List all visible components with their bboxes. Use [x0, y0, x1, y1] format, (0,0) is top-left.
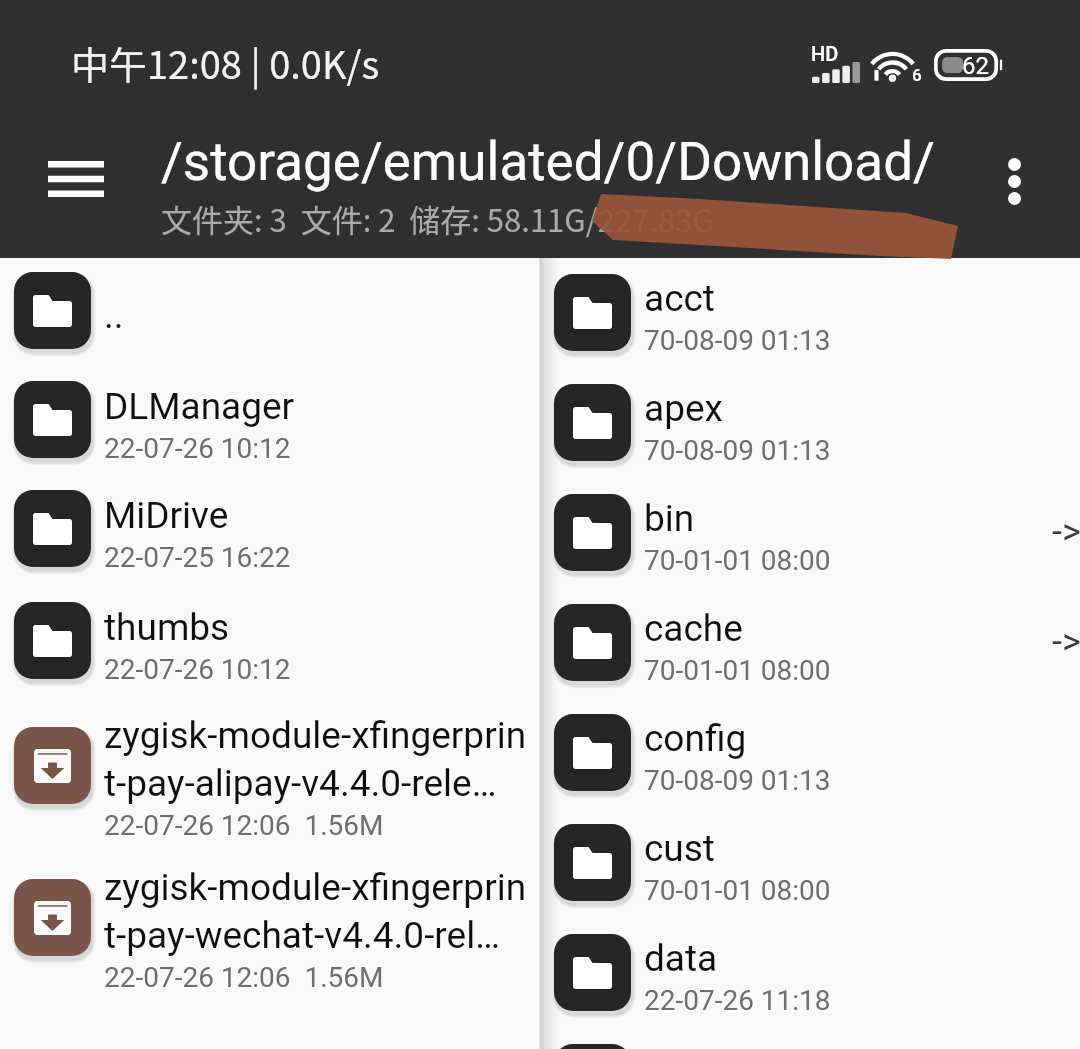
- staticText: DLManager: [104, 385, 295, 428]
- button[interactable]: ..: [0, 258, 539, 367]
- staticText: cache: [644, 607, 743, 650]
- button[interactable]: cache: [541, 589, 1080, 699]
- button[interactable]: zygisk-module-xfingerprin t-pay-wechat-v…: [0, 843, 539, 995]
- button[interactable]: bin: [541, 479, 1080, 589]
- staticText: 70-08-09 01:13: [644, 434, 831, 467]
- button[interactable]: config: [541, 699, 1080, 809]
- button[interactable]: More options: [966, 140, 1062, 222]
- staticText: data: [644, 937, 718, 980]
- button[interactable]: DLManager: [0, 367, 539, 476]
- staticText: MiDrive: [104, 494, 229, 537]
- staticText: 70-01-01 08:00: [644, 654, 831, 687]
- staticText: zygisk-module-xfingerprin t-pay-alipay-v…: [104, 714, 527, 805]
- staticText: cust: [644, 827, 715, 870]
- staticText: ..: [104, 294, 124, 337]
- staticText: ->: [1052, 511, 1080, 553]
- staticText: config: [644, 717, 747, 760]
- staticText: 22-07-26 12:06 1.56M: [104, 961, 384, 994]
- staticText: 22-07-26 10:12: [104, 432, 291, 465]
- staticText: 70-08-09 01:13: [644, 324, 831, 357]
- staticText: 22-07-26 12:06 1.56M: [104, 809, 384, 842]
- staticText: ->: [1052, 621, 1080, 663]
- staticText: 6: [912, 65, 922, 85]
- staticText: 22-07-26 11:18: [644, 984, 831, 1017]
- button[interactable]: apex: [541, 369, 1080, 479]
- staticText: 22-07-25 16:22: [104, 541, 291, 574]
- staticText: 70-08-09 01:13: [644, 764, 831, 797]
- staticText: 文件夹: 3 文件: 2 储存: 58.11G/227.83G: [161, 196, 714, 241]
- staticText: 70-01-01 08:00: [644, 544, 831, 577]
- button[interactable]: acct: [541, 259, 1080, 369]
- button[interactable]: zygisk-module-xfingerprin t-pay-alipay-v…: [0, 691, 539, 843]
- staticText: apex: [644, 387, 723, 430]
- staticText: 中午12:08 | 0.0K/s: [71, 35, 380, 90]
- button[interactable]: Menu: [28, 138, 124, 220]
- staticText: /storage/emulated/0/Download/: [161, 131, 935, 193]
- staticText: 70-01-01 08:00: [644, 874, 831, 907]
- staticText: bin: [644, 497, 695, 540]
- staticText: HD: [811, 42, 839, 65]
- staticText: acct: [644, 277, 715, 320]
- button[interactable]: MiDrive: [0, 476, 539, 585]
- button[interactable]: thumbs: [0, 588, 539, 697]
- staticText: zygisk-module-xfingerprin t-pay-wechat-v…: [104, 866, 527, 957]
- button[interactable]: cust: [541, 809, 1080, 919]
- staticText: thumbs: [104, 606, 230, 649]
- button[interactable]: dev: [541, 1029, 1080, 1049]
- staticText: 62: [962, 52, 989, 80]
- staticText: 22-07-26 10:12: [104, 653, 291, 686]
- button[interactable]: data: [541, 919, 1080, 1029]
